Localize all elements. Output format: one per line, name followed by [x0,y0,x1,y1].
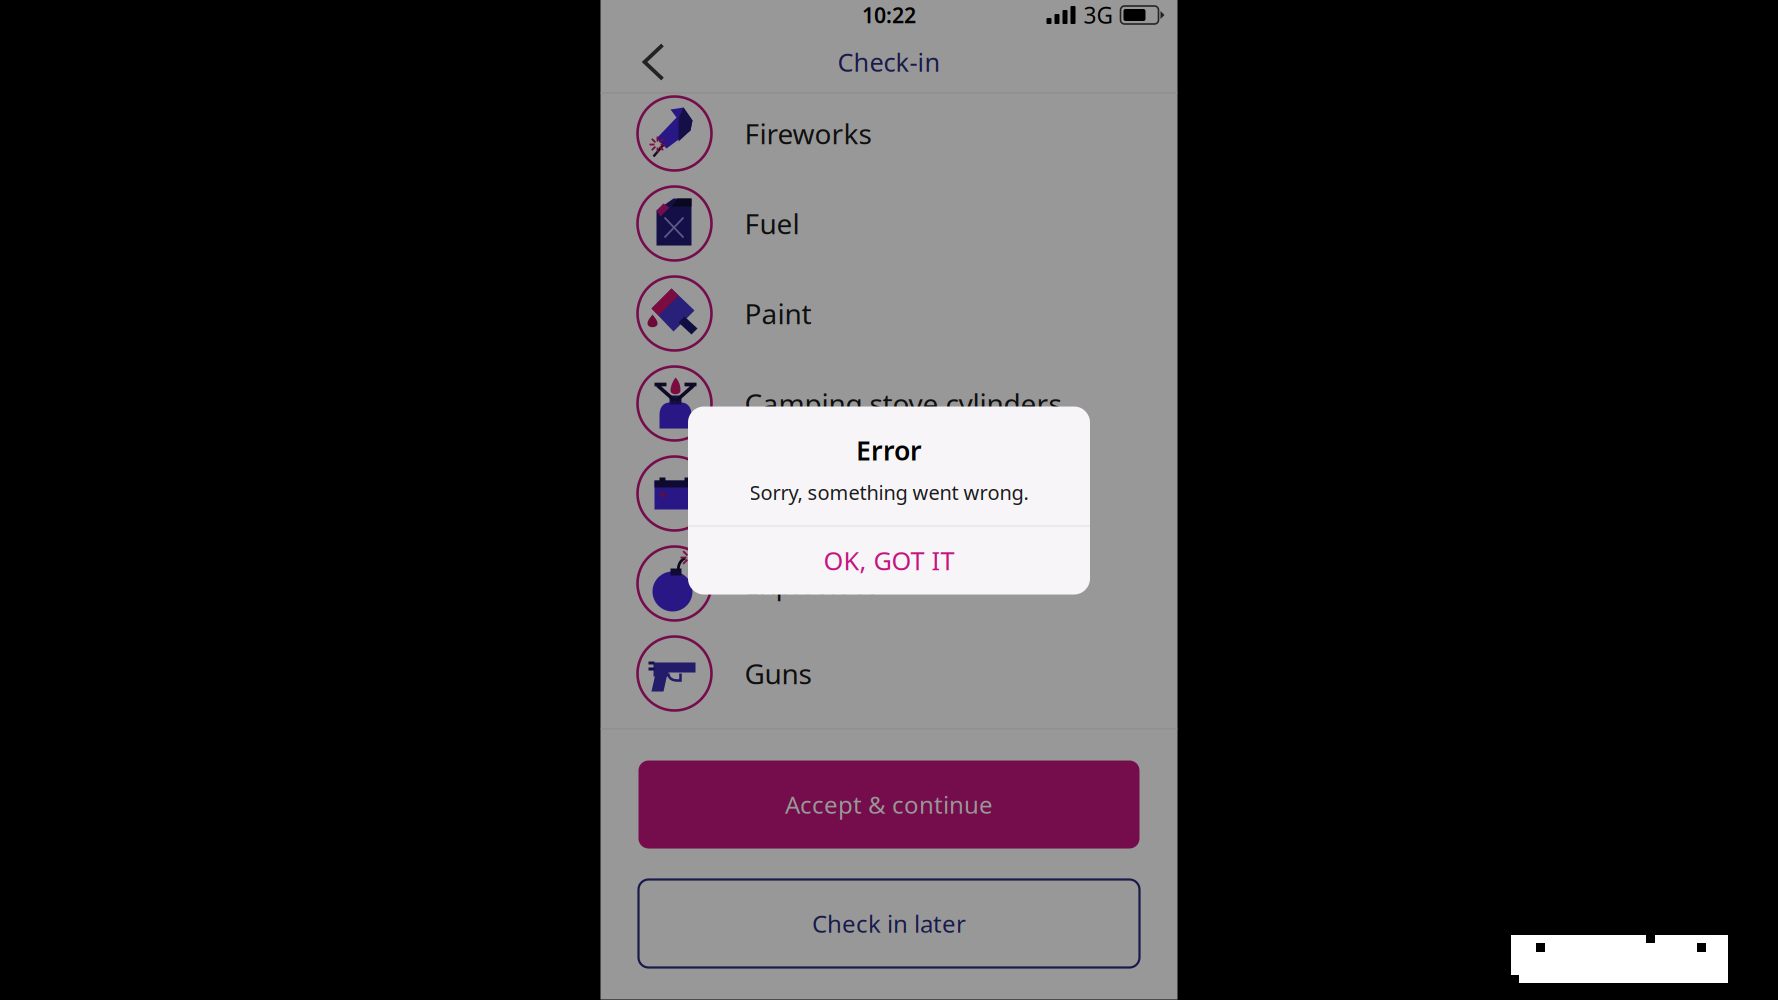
button[interactable]: Explosives [600,538,1177,628]
staticText: 3G [1083,0,1113,30]
staticText: Car batteries [744,475,914,512]
button[interactable]: OK, GOT IT [688,526,1090,594]
button[interactable]: Guns [600,628,1177,718]
staticText: Check-in [837,45,940,79]
button[interactable]: Camping stove cylinders [600,358,1177,448]
staticText: 10:22 [862,1,916,29]
staticText: Camping stove cylinders [744,385,1061,422]
button[interactable]: Back [630,31,692,93]
button[interactable]: Accept & continue [638,760,1139,848]
staticText: Error [856,432,922,468]
staticText: Check in later [812,908,966,939]
staticText: Guns [744,655,811,692]
button[interactable]: Fuel [600,178,1177,268]
staticText: Sorry, something went wrong. [749,479,1028,505]
staticText: Paint [744,295,811,332]
button[interactable]: Car batteries [600,448,1177,538]
staticText: Fireworks [744,115,871,152]
staticText: Fuel [744,205,799,242]
staticText: Accept & continue [785,789,993,820]
staticText: OK, GOT IT [823,544,954,577]
staticText: Explosives [744,565,879,602]
button[interactable]: Paint [600,268,1177,358]
button[interactable]: Check in later [638,879,1139,967]
button[interactable]: Fireworks [600,88,1177,178]
